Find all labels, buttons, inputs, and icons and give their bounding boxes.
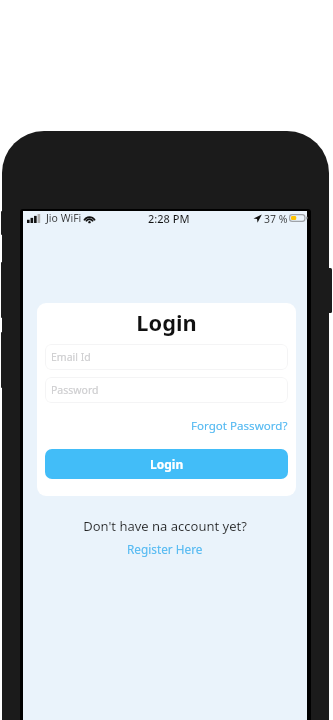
staticText: Login <box>150 456 184 472</box>
staticText: Jio WiFi <box>46 211 82 225</box>
button[interactable]: Forgot Password? <box>191 418 288 434</box>
staticText: Password <box>51 383 99 397</box>
button[interactable]: Email Id <box>45 344 288 370</box>
button[interactable]: Login <box>45 449 288 479</box>
staticText: Email Id <box>51 350 91 364</box>
staticText: Register Here <box>127 541 203 557</box>
button[interactable]: Register Here <box>127 541 203 557</box>
other: Cellular signal strength <box>27 214 41 223</box>
staticText: Don't have na account yet? <box>23 517 307 535</box>
staticText: Login <box>37 308 296 338</box>
staticText: 2:28 PM <box>148 211 190 226</box>
staticText: 37 % <box>264 212 288 226</box>
staticText: Forgot Password? <box>191 418 288 434</box>
button[interactable]: Password <box>45 377 288 403</box>
